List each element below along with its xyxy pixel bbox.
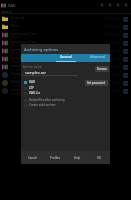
staticText: 120 KB [11,76,21,79]
button[interactable]: Select all [106,1,114,9]
button[interactable]: ZIP [23,85,34,90]
button[interactable]: Open archive [122,88,128,94]
staticText: samples.rar [11,63,31,68]
button[interactable]: Open archive [122,16,128,22]
button[interactable]: Android [0,15,131,23]
staticText: Profiles [50,156,61,160]
button[interactable]: OK [88,151,110,164]
button[interactable]: media.part2.rar [0,39,131,47]
button[interactable]: Open archive [122,48,128,54]
button[interactable]: Sort [114,1,122,9]
staticText: 1.2 MB [11,68,21,71]
staticText: 12/31/2014 [104,73,120,77]
staticText: NewRelease.apk [11,79,38,84]
staticText: media.part2.rar [11,39,37,44]
button[interactable]: Open archive [122,80,128,86]
button[interactable]: Open archive [122,32,128,38]
staticText: 12/31/2014 [104,49,120,53]
staticText: General [60,55,72,59]
staticText: Delete files after archiving [29,98,65,102]
staticText: Browse [97,67,107,71]
button[interactable]: Delete files after archiving [23,97,65,102]
staticText: RAR 4.x [29,91,41,95]
button[interactable]: Advanced [85,54,110,62]
staticText: /sdcard [1,10,12,13]
staticText: Music [11,23,21,28]
button[interactable]: media.part1.rar [0,31,131,39]
staticText: Archiving options [24,47,59,53]
staticText: Advanced [90,55,105,59]
button[interactable]: Connect.jpg [0,87,131,95]
staticText: 12/31/2014 [104,81,120,85]
staticText: RAR [29,80,36,84]
staticText: Help [74,156,81,160]
button[interactable]: RAR 4.x [23,90,41,95]
staticText: Notify.zip [11,71,27,76]
button[interactable]: NewRelease.apk [0,79,131,87]
staticText: Possible.rar [11,55,31,60]
button[interactable]: Help [66,151,88,164]
button[interactable]: Open archive [122,56,128,62]
button[interactable]: RAR [23,79,36,84]
button[interactable]: samples.rar [0,63,131,71]
staticText: 1.8 MB [11,92,21,95]
button[interactable]: More options [122,1,130,9]
button[interactable]: Set password [85,80,108,86]
button[interactable]: Profiles [44,151,66,164]
button[interactable]: Notify.zip [0,71,131,79]
button[interactable]: Music [0,23,131,31]
button[interactable]: Cancel [21,151,44,164]
staticText: Archive name [23,65,42,69]
button[interactable]: Open archive [122,40,128,46]
button[interactable]: Open archive [122,72,128,78]
staticText: samples.rar [25,70,46,75]
staticText: 12/31/2014 [104,57,120,61]
staticText: Cancel [28,156,37,160]
staticText: media.part3.rar [11,47,37,52]
button[interactable]: media.part3.rar [0,47,131,55]
staticText: ZIP [29,86,34,90]
staticText: OK [97,156,102,160]
staticText: 12/31/2014 [104,65,120,69]
button[interactable]: Possible.rar [0,55,131,63]
button[interactable]: General [47,54,85,62]
staticText: 12/31/2014 [104,41,120,45]
staticText: Connect.jpg [11,87,31,92]
staticText: media.part1.rar [11,31,37,36]
staticText: Android [11,15,25,20]
staticText: 12/31/2014 [104,89,120,93]
button[interactable]: Create solid archive [23,102,56,107]
button[interactable]: Browse [95,66,109,72]
button[interactable]: Open archive [122,64,128,70]
staticText: RAR [8,3,16,8]
button[interactable]: Open archive [122,24,128,30]
button[interactable]: Search [98,1,106,9]
staticText: Set password [87,81,106,85]
staticText: 4.4 MB [11,84,21,87]
staticText: Create solid archive [29,103,56,107]
